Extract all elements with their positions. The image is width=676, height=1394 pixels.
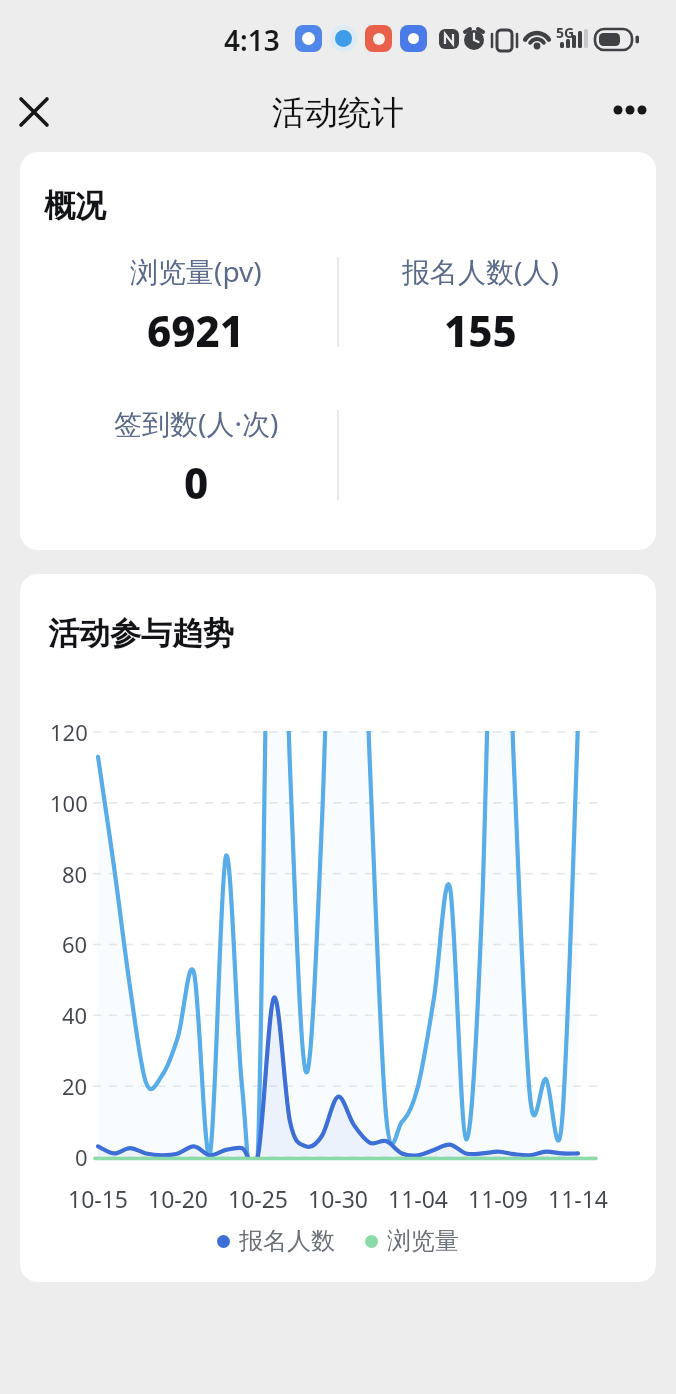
staticText: 概况 (44, 186, 106, 225)
staticText: 4:13 (224, 21, 280, 59)
staticText: 100 (50, 788, 88, 818)
staticText: 10-20 (148, 1183, 209, 1213)
button[interactable]: 浏览量(pv) (66, 252, 326, 359)
staticText: 11-14 (548, 1183, 609, 1213)
staticText: 报名人数 (239, 1226, 335, 1256)
staticText: 6921 (147, 302, 245, 359)
staticText: 10-30 (308, 1183, 369, 1213)
button[interactable] (10, 88, 58, 136)
staticText: 浏览量(pv) (130, 252, 262, 290)
staticText: 40 (62, 1000, 88, 1030)
staticText: 0 (75, 1142, 88, 1172)
staticText: 活动统计 (272, 92, 404, 134)
staticText: 活动参与趋势 (48, 614, 234, 653)
staticText: 5G (556, 23, 575, 42)
button[interactable] (604, 86, 656, 134)
staticText: 20 (62, 1071, 88, 1101)
staticText: 11-04 (388, 1183, 449, 1213)
staticText: 10-25 (228, 1183, 289, 1213)
staticText: 80 (62, 859, 88, 889)
staticText: 0 (184, 454, 209, 511)
button[interactable]: 报名人数(人) (350, 252, 610, 359)
staticText: 155 (444, 302, 517, 359)
staticText: 10-15 (68, 1183, 129, 1213)
staticText: 11-09 (468, 1183, 529, 1213)
staticText: 120 (50, 717, 88, 747)
staticText: 签到数(人·次) (114, 404, 279, 442)
button[interactable] (365, 1235, 378, 1248)
staticText: 报名人数(人) (402, 252, 559, 290)
button[interactable] (217, 1235, 230, 1248)
staticText: 浏览量 (387, 1226, 459, 1256)
staticText: 60 (62, 929, 88, 959)
button[interactable]: 签到数(人·次) (66, 404, 326, 511)
